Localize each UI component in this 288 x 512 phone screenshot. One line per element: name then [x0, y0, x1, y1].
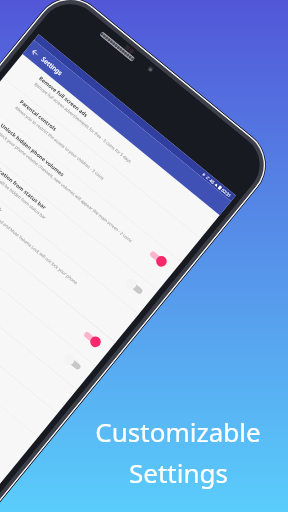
button[interactable]: Unlock hidden phone volumes [0, 101, 181, 291]
button[interactable]: Start on boot [0, 205, 96, 390]
staticText: Settings [39, 55, 64, 78]
staticText: Notification icon will be hidden from st… [0, 157, 48, 220]
staticText: Volume buttons will be disabled and Mute… [0, 180, 79, 285]
button[interactable]: Back [22, 40, 48, 65]
staticText: Parental controls [18, 98, 58, 132]
staticText: Settings [129, 455, 228, 490]
button[interactable]: Toggle setting [81, 328, 103, 349]
staticText: Remove full screen advertisements for fr… [33, 81, 133, 164]
staticText: Unlock your phone volume channels, new v… [0, 128, 134, 243]
button[interactable]: Parental controls [0, 77, 200, 262]
button[interactable]: Toggle setting [62, 352, 84, 373]
button[interactable]: Toggle setting [147, 248, 169, 269]
button[interactable]: Dark theme [0, 252, 57, 437]
button[interactable]: Hide notification from status bar [0, 129, 158, 314]
staticText: Volume buttons lock [0, 174, 3, 214]
button[interactable]: Mute volume lock [0, 181, 115, 366]
staticText: 02:31 [220, 187, 232, 198]
staticText: Allows you to restrict the access to you… [14, 105, 105, 181]
button[interactable]: Remove full screen ads [3, 54, 220, 239]
staticText: Hide notification from status bar [0, 150, 48, 211]
button[interactable]: Show notification [0, 229, 77, 413]
staticText: Customizable [95, 414, 261, 449]
button[interactable]: Toggle setting [123, 276, 146, 297]
staticText: Unlock hidden phone volumes [0, 122, 66, 178]
staticText: 4G [208, 178, 216, 185]
staticText: Remove full screen ads [38, 75, 89, 119]
button[interactable]: Volume buttons lock [0, 153, 139, 343]
